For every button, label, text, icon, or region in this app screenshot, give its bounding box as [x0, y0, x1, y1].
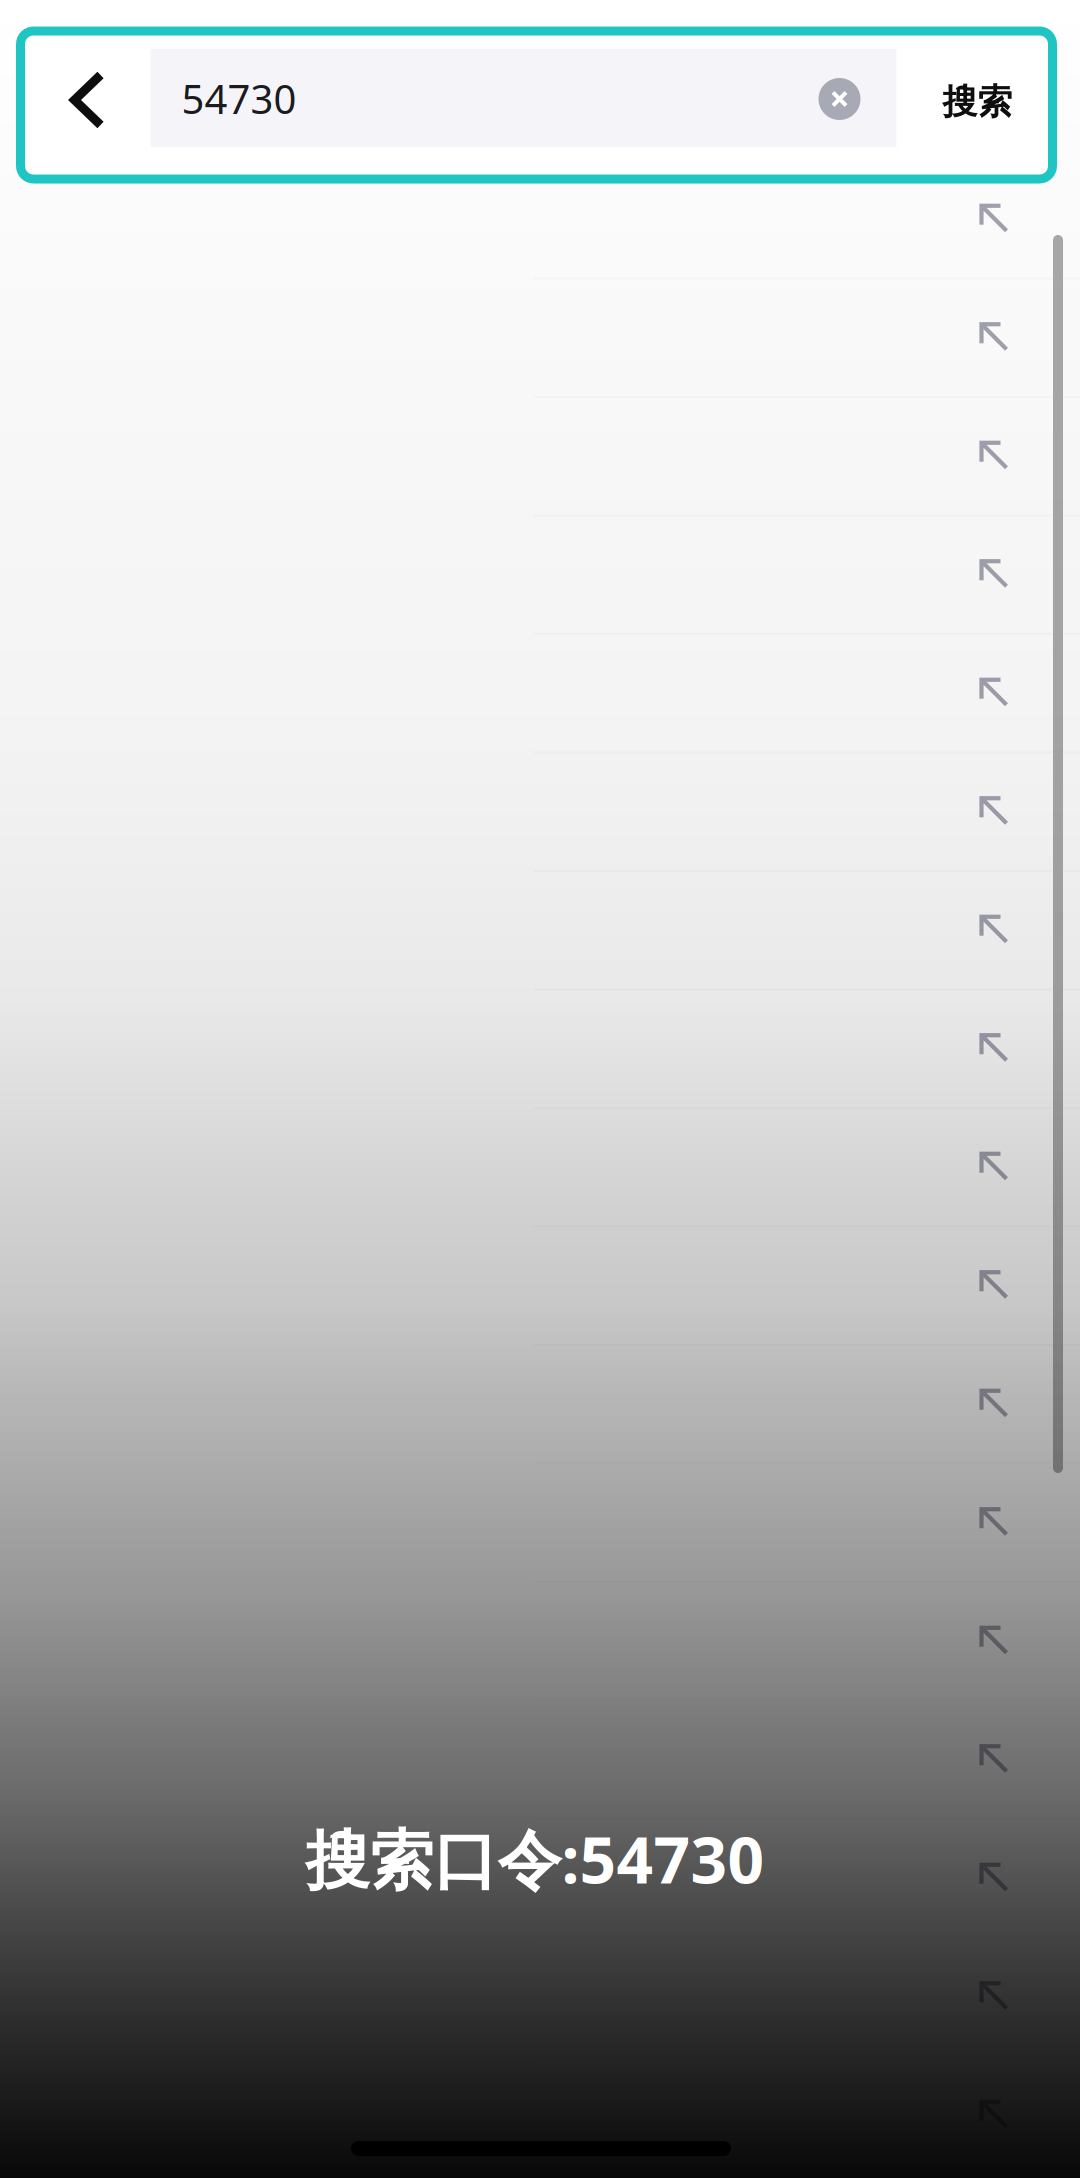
button[interactable]: 填入搜索词 [0, 278, 1080, 396]
button[interactable]: 填入搜索词 [0, 1818, 1080, 1937]
button[interactable]: 填入搜索词 [0, 752, 1080, 870]
button[interactable]: 填入搜索词 [0, 159, 1080, 278]
staticText: 搜索 [942, 80, 1012, 124]
button[interactable]: 填入搜索词 [0, 870, 1080, 989]
button[interactable]: 填入搜索词 [0, 1344, 1080, 1463]
button[interactable]: 返回 [43, 31, 131, 167]
button[interactable]: 填入搜索词 [0, 396, 1080, 515]
button[interactable]: 填入搜索词 [0, 989, 1080, 1107]
button[interactable]: 填入搜索词 [0, 2055, 1080, 2174]
button[interactable]: 填入搜索词 [0, 1581, 1080, 1700]
button[interactable]: 填入搜索词 [0, 515, 1080, 633]
button[interactable]: 填入搜索词 [0, 1107, 1080, 1226]
button[interactable]: 清除 [796, 56, 882, 142]
button[interactable]: 填入搜索词 [0, 1463, 1080, 1581]
button[interactable]: 搜索 [920, 50, 1034, 154]
button[interactable]: 填入搜索词 [0, 1700, 1080, 1818]
button[interactable]: 填入搜索词 [0, 1226, 1080, 1344]
staticText: 搜索口令:54730 [305, 1815, 764, 1902]
staticText: 54730 [181, 72, 296, 125]
button[interactable]: 填入搜索词 [0, 633, 1080, 752]
button[interactable]: 填入搜索词 [0, 1937, 1080, 2055]
